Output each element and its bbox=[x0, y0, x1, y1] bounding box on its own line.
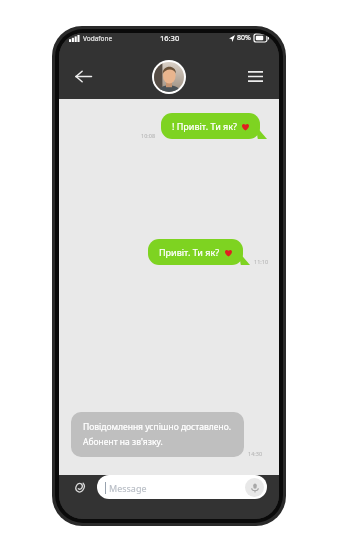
staticText: 14:30 bbox=[248, 450, 263, 457]
staticText: 10:08 bbox=[141, 132, 156, 139]
button[interactable]: Повідомлення успішно доставлено. bbox=[71, 412, 244, 457]
staticText: Vodafone bbox=[83, 34, 113, 43]
button[interactable]: Menu bbox=[239, 60, 271, 92]
staticText: ! Привіт. Ти як? bbox=[172, 120, 237, 132]
button[interactable]: Back bbox=[67, 60, 99, 92]
button[interactable]: Contact profile bbox=[152, 60, 186, 94]
staticText: Повідомлення успішно доставлено. bbox=[83, 421, 232, 433]
button[interactable]: Voice message bbox=[245, 478, 264, 497]
staticText: Абонент на зв'язку. bbox=[83, 436, 163, 448]
staticText: 80% bbox=[237, 33, 251, 43]
button[interactable]: ! Привіт. Ти як? bbox=[161, 113, 267, 139]
button[interactable]: Attach file bbox=[68, 476, 90, 498]
staticText: 16:30 bbox=[160, 33, 180, 43]
staticText: Message bbox=[109, 482, 147, 494]
staticText: Привіт. Ти як? bbox=[159, 246, 220, 258]
staticText: 11:10 bbox=[254, 258, 269, 265]
button[interactable]: Message bbox=[97, 475, 267, 499]
button[interactable]: Привіт. Ти як? bbox=[148, 239, 250, 265]
